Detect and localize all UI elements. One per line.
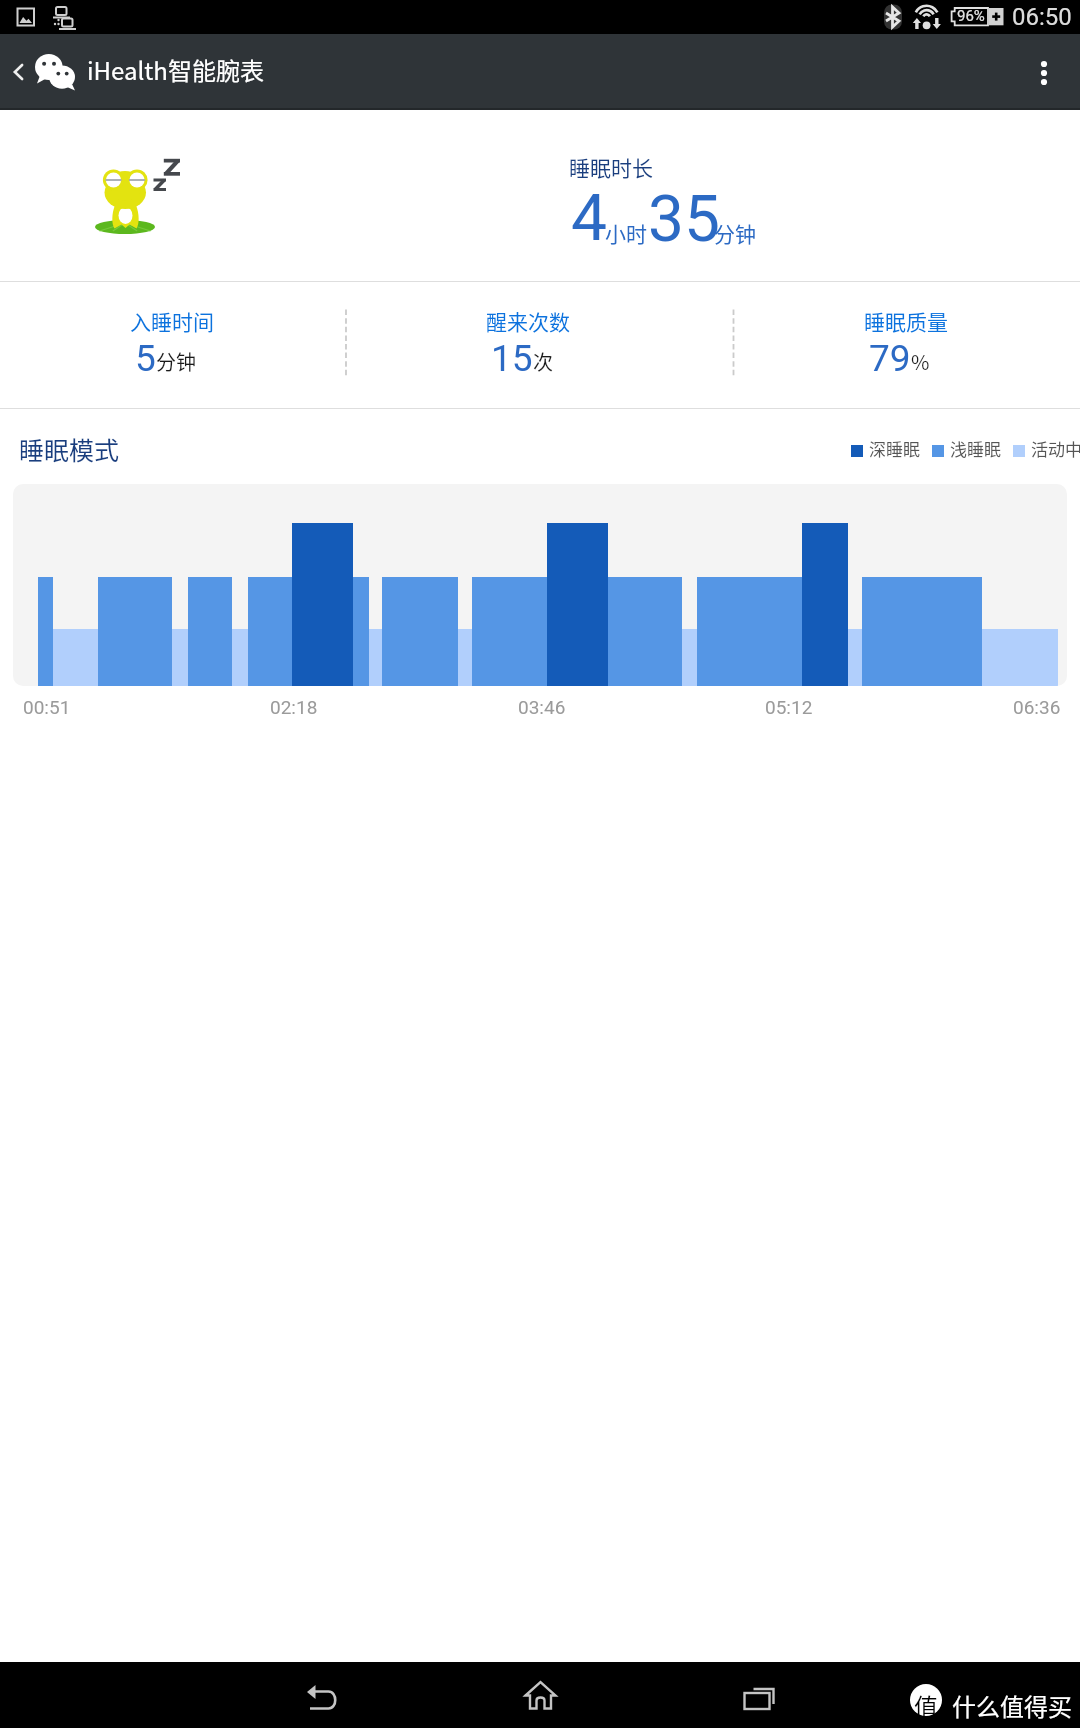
staticText: 分钟 <box>156 347 196 376</box>
staticText: 睡眠质量 <box>864 306 948 336</box>
staticText: 03:46 <box>518 696 566 718</box>
staticText: 96% <box>957 7 985 25</box>
staticText: 05:12 <box>765 696 813 718</box>
staticText: iHealth智能腕表 <box>87 52 264 87</box>
staticText: 值 <box>914 1688 938 1723</box>
button[interactable]: More options <box>1008 35 1080 110</box>
staticText: 活动中 <box>1031 436 1080 461</box>
staticText: 79 <box>869 337 911 380</box>
staticText: % <box>911 347 930 376</box>
staticText: 4 <box>571 181 607 256</box>
staticText: 分钟 <box>714 218 756 248</box>
staticText: 15 <box>491 337 533 380</box>
staticText: 35 <box>648 182 720 257</box>
staticText: 小时 <box>605 218 647 248</box>
staticText: 入睡时间 <box>130 306 214 336</box>
staticText: 06:50 <box>1012 3 1072 31</box>
button[interactable]: Home <box>510 1662 570 1728</box>
staticText: 醒来次数 <box>486 306 570 336</box>
staticText: 06:36 <box>1013 696 1061 718</box>
staticText: 什么值得买 <box>952 1688 1072 1723</box>
button[interactable]: Back <box>292 1662 352 1728</box>
button[interactable]: Recent apps <box>729 1662 789 1728</box>
staticText: 5 <box>135 337 156 380</box>
staticText: 次 <box>533 347 553 376</box>
staticText: 02:18 <box>270 696 318 718</box>
staticText: 00:51 <box>23 696 71 718</box>
button[interactable]: Back <box>0 34 38 109</box>
staticText: 睡眠时长 <box>569 152 653 182</box>
staticText: 深睡眠 <box>869 436 920 461</box>
staticText: 浅睡眠 <box>950 436 1001 461</box>
staticText: 睡眠模式 <box>19 431 120 467</box>
